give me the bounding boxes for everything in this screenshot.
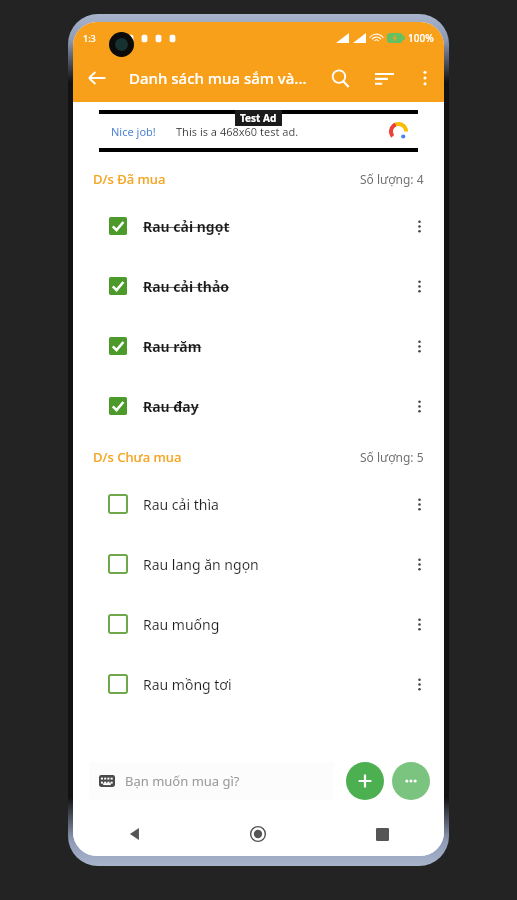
button[interactable]: Sort — [362, 56, 406, 100]
staticText: 1:3 — [83, 32, 96, 44]
staticText: Rau cải ngọt — [143, 217, 400, 236]
button[interactable]: Checked Rau răm — [73, 316, 444, 376]
staticText: This is a 468x60 test ad. — [176, 124, 389, 139]
staticText: Bạn muốn mua gì? — [125, 772, 240, 790]
button[interactable]: Checked Rau cải ngọt — [103, 211, 133, 241]
button[interactable]: More options — [406, 59, 444, 97]
button[interactable]: Item options — [400, 327, 438, 365]
button[interactable]: Back — [73, 54, 121, 102]
button[interactable]: Unchecked Rau cải thìa — [103, 489, 133, 519]
button[interactable]: Unchecked Rau mồng tơi — [103, 669, 133, 699]
staticText: Rau cải thìa — [143, 495, 400, 514]
staticText: Số lượng: 4 — [360, 171, 424, 187]
button[interactable]: Checked Rau cải thảo — [103, 271, 133, 301]
button[interactable]: Item options — [400, 207, 438, 245]
button[interactable]: Checked Rau đay — [73, 376, 444, 436]
staticText: D/s Đã mua — [93, 170, 166, 188]
button[interactable]: Unchecked Rau cải thìa — [73, 474, 444, 534]
button[interactable]: Unchecked Rau lang ăn ngọn — [103, 549, 133, 579]
staticText: Rau muống — [143, 615, 400, 634]
button[interactable]: Back — [73, 812, 196, 856]
staticText: D/s Chưa mua — [93, 448, 182, 466]
staticText: Danh sách mua sắm và... — [129, 68, 318, 88]
button[interactable]: Checked Rau cải ngọt — [73, 196, 444, 256]
button[interactable]: Checked Rau răm — [103, 331, 133, 361]
staticText: Số lượng: 5 — [360, 449, 424, 465]
staticText: Rau cải thảo — [143, 277, 400, 296]
button[interactable]: Item options — [400, 485, 438, 523]
staticText: Rau mồng tơi — [143, 675, 400, 694]
button[interactable]: Add item — [346, 762, 384, 800]
staticText: Nice job! — [111, 124, 156, 139]
button[interactable]: Unchecked Rau mồng tơi — [73, 654, 444, 714]
staticText: Rau răm — [143, 337, 400, 356]
staticText: Rau lang ăn ngọn — [143, 555, 400, 574]
button[interactable]: Bạn muốn mua gì? — [89, 762, 334, 800]
staticText: Rau đay — [143, 397, 400, 416]
button[interactable]: Unchecked Rau lang ăn ngọn — [73, 534, 444, 594]
button[interactable]: More actions — [392, 762, 430, 800]
button[interactable]: Item options — [400, 665, 438, 703]
staticText: 100% — [408, 31, 434, 45]
button[interactable]: Search — [318, 56, 362, 100]
button[interactable]: Item options — [400, 605, 438, 643]
button[interactable]: Unchecked Rau muống — [73, 594, 444, 654]
button[interactable]: Unchecked Rau muống — [103, 609, 133, 639]
button[interactable]: Item options — [400, 545, 438, 583]
button[interactable]: Recent apps — [320, 812, 444, 856]
button[interactable]: Home — [196, 812, 320, 856]
button[interactable]: Item options — [400, 387, 438, 425]
button[interactable]: Checked Rau cải thảo — [73, 256, 444, 316]
staticText: Test Ad — [240, 111, 277, 125]
button[interactable]: Checked Rau đay — [103, 391, 133, 421]
button[interactable]: Item options — [400, 267, 438, 305]
